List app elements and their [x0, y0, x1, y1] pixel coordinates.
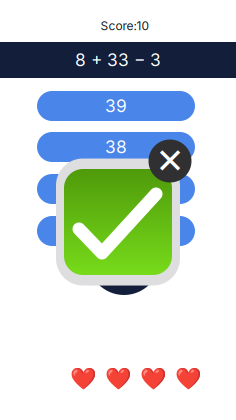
- button[interactable]: 39: [37, 91, 195, 121]
- button[interactable]: Close: [148, 139, 191, 182]
- staticText: Score:10: [100, 19, 149, 33]
- button[interactable]: 42: [37, 216, 195, 246]
- button[interactable]: 35: [37, 174, 195, 204]
- staticText: ❤️: [105, 366, 132, 391]
- staticText: 38: [105, 136, 127, 157]
- staticText: ❤️: [70, 366, 97, 391]
- staticText: 35: [105, 178, 127, 199]
- staticText: 42: [105, 220, 127, 241]
- staticText: ❤️: [140, 366, 167, 391]
- staticText: 39: [105, 95, 127, 116]
- staticText: ✕: [155, 141, 184, 181]
- staticText: ❤️: [175, 366, 202, 391]
- button[interactable]: 38: [37, 132, 195, 162]
- staticText: 8 + 33 − 3: [75, 49, 161, 70]
